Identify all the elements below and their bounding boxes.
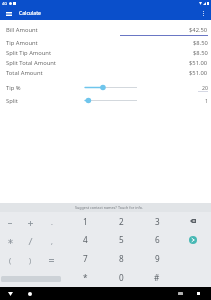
button[interactable]: Split — [6, 95, 208, 106]
staticText: $51.00 — [189, 59, 208, 67]
button[interactable]: Tip % — [6, 82, 208, 93]
staticText: 5 — [119, 234, 124, 245]
staticText: 2 — [119, 216, 124, 227]
button[interactable]: 8 — [103, 249, 139, 268]
staticText: Bill Amount — [6, 26, 38, 34]
button[interactable]: 7 — [67, 249, 103, 268]
other: Delete — [190, 219, 196, 223]
button[interactable]: ) — [20, 251, 41, 270]
button[interactable]: Enter — [175, 230, 211, 249]
button[interactable]: 3 — [139, 212, 175, 230]
staticText: , — [51, 237, 53, 247]
button[interactable]: 1 — [67, 212, 103, 230]
button[interactable]: Total Amount — [6, 68, 208, 78]
staticText: ( — [9, 256, 12, 266]
button[interactable]: More options — [196, 7, 211, 20]
staticText: 1 — [83, 216, 88, 227]
other: Enter — [189, 236, 197, 244]
staticText: 6 — [155, 234, 160, 245]
staticText: Suggest contact names? Touch for info. — [75, 205, 143, 210]
staticText: $51.00 — [189, 69, 208, 77]
staticText: $8.50 — [193, 39, 208, 47]
button[interactable]: , — [41, 232, 62, 251]
staticText: 3 — [155, 216, 160, 227]
staticText: Tip Amount — [6, 39, 38, 47]
staticText: 9 — [155, 253, 160, 264]
button[interactable]: Hide keyboard — [4, 287, 17, 300]
button[interactable]: 9 — [139, 249, 175, 268]
button[interactable] — [20, 232, 41, 251]
button[interactable]: Delete — [175, 212, 211, 230]
button[interactable]: 5 — [103, 230, 139, 249]
staticText: Split Total Amount — [6, 59, 56, 67]
staticText: . — [51, 218, 53, 228]
button[interactable]: Recents — [192, 287, 205, 300]
button[interactable]: Suggest contact names? Touch for info. — [0, 203, 211, 212]
button[interactable]: Menu — [0, 7, 17, 20]
button[interactable]: Tip Amount — [6, 38, 208, 48]
button[interactable]: # — [139, 268, 175, 287]
button[interactable]: Split Tip Amount — [6, 48, 208, 58]
staticText: 1 — [195, 97, 208, 104]
button[interactable]: 4 — [67, 230, 103, 249]
button[interactable] — [0, 232, 20, 251]
staticText: Total Amount — [6, 69, 43, 77]
button[interactable]: Home — [23, 287, 36, 300]
button[interactable]: 0 — [103, 268, 139, 287]
staticText: 0 — [119, 272, 124, 283]
button[interactable]: Bill Amount — [6, 25, 208, 35]
staticText: # — [154, 272, 160, 283]
button[interactable] — [20, 214, 41, 232]
staticText: ) — [29, 256, 32, 266]
staticText: 20 — [195, 84, 208, 91]
button[interactable]: 6 — [139, 230, 175, 249]
staticText: 8 — [119, 253, 124, 264]
button[interactable] — [41, 251, 62, 270]
staticText: Calculate — [19, 10, 41, 17]
button[interactable] — [0, 214, 20, 232]
button[interactable]: Switch keyboard — [174, 287, 187, 300]
staticText: Tip % — [6, 84, 28, 92]
staticText: 4G — [2, 1, 8, 6]
staticText: $42.50 — [189, 26, 208, 34]
staticText: Split Tip Amount — [6, 49, 52, 57]
button[interactable]: Split Total Amount — [6, 58, 208, 68]
staticText: Split — [6, 97, 28, 105]
staticText: 4 — [83, 234, 88, 245]
staticText: * — [83, 272, 88, 283]
staticText: $8.50 — [193, 49, 208, 57]
staticText: 7 — [83, 253, 88, 264]
button[interactable]: * — [67, 268, 103, 287]
button[interactable]: ( — [0, 251, 20, 270]
button[interactable]: 2 — [103, 212, 139, 230]
